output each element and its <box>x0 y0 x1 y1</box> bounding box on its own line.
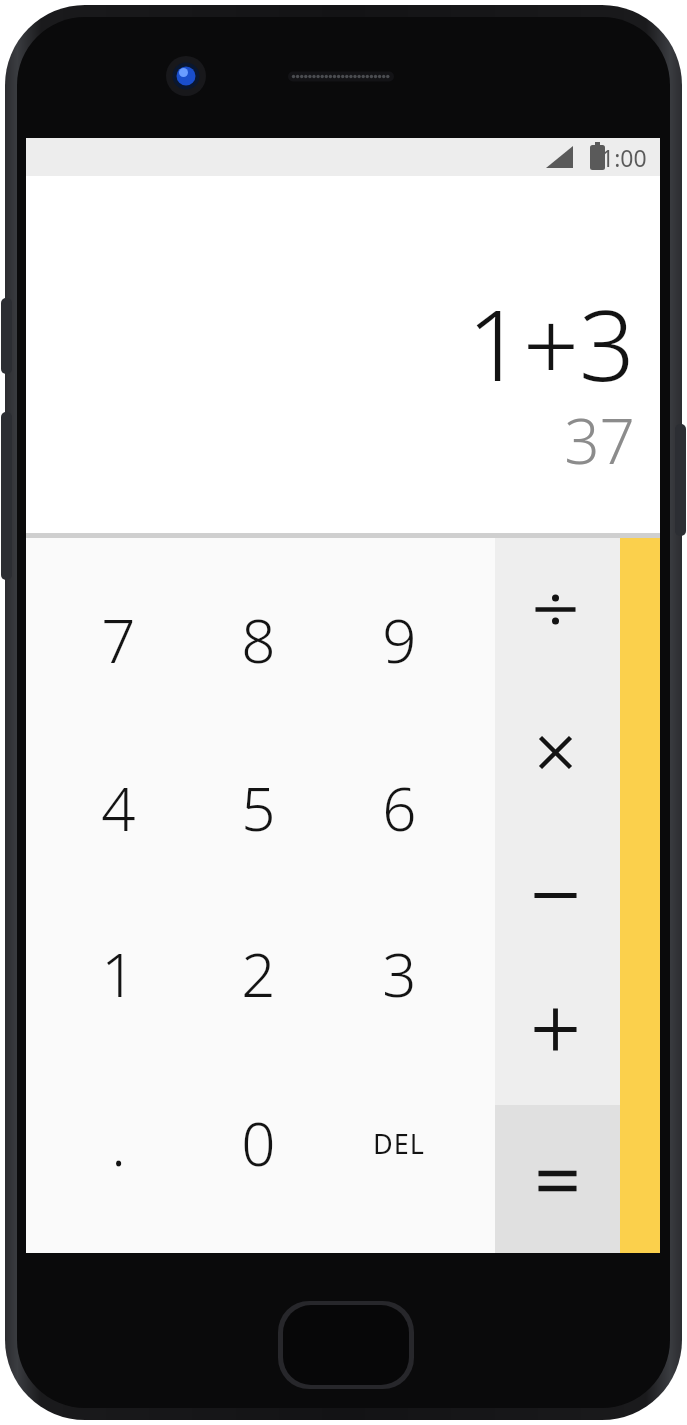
staticText: 6 <box>382 767 417 849</box>
button[interactable]: . <box>45 1059 191 1227</box>
staticText: 1:00 <box>601 142 647 173</box>
staticText: 9 <box>382 599 417 681</box>
button[interactable]: 2 <box>185 890 331 1058</box>
staticText: . <box>111 1102 126 1184</box>
staticText: 1 <box>101 933 136 1015</box>
button[interactable]: 4 <box>45 724 191 892</box>
button[interactable]: 1+3 <box>26 176 660 538</box>
button[interactable]: Divide <box>493 538 618 681</box>
button[interactable]: Multiply <box>493 681 618 824</box>
button[interactable]: Equals <box>495 1105 620 1253</box>
button[interactable]: 8 <box>185 556 331 724</box>
button[interactable]: 0 <box>185 1059 331 1227</box>
button[interactable]: 3 <box>326 890 472 1058</box>
button[interactable]: DEL <box>326 1059 472 1227</box>
staticText: 37 <box>564 398 635 482</box>
staticText: 2 <box>241 933 276 1015</box>
button[interactable]: 5 <box>185 724 331 892</box>
staticText: DEL <box>373 1125 425 1162</box>
button[interactable]: Plus <box>493 958 618 1101</box>
staticText: 8 <box>241 599 276 681</box>
staticText: 0 <box>241 1102 276 1184</box>
staticText: 5 <box>241 767 276 849</box>
staticText: 3 <box>382 933 417 1015</box>
staticText: 1+3 <box>467 276 635 409</box>
button[interactable]: 9 <box>326 556 472 724</box>
staticText: 4 <box>101 767 136 849</box>
button[interactable]: Minus <box>493 824 618 967</box>
button[interactable]: 6 <box>326 724 472 892</box>
button[interactable]: 7 <box>45 556 191 724</box>
staticText: 7 <box>101 599 136 681</box>
button[interactable]: 1 <box>45 890 191 1058</box>
